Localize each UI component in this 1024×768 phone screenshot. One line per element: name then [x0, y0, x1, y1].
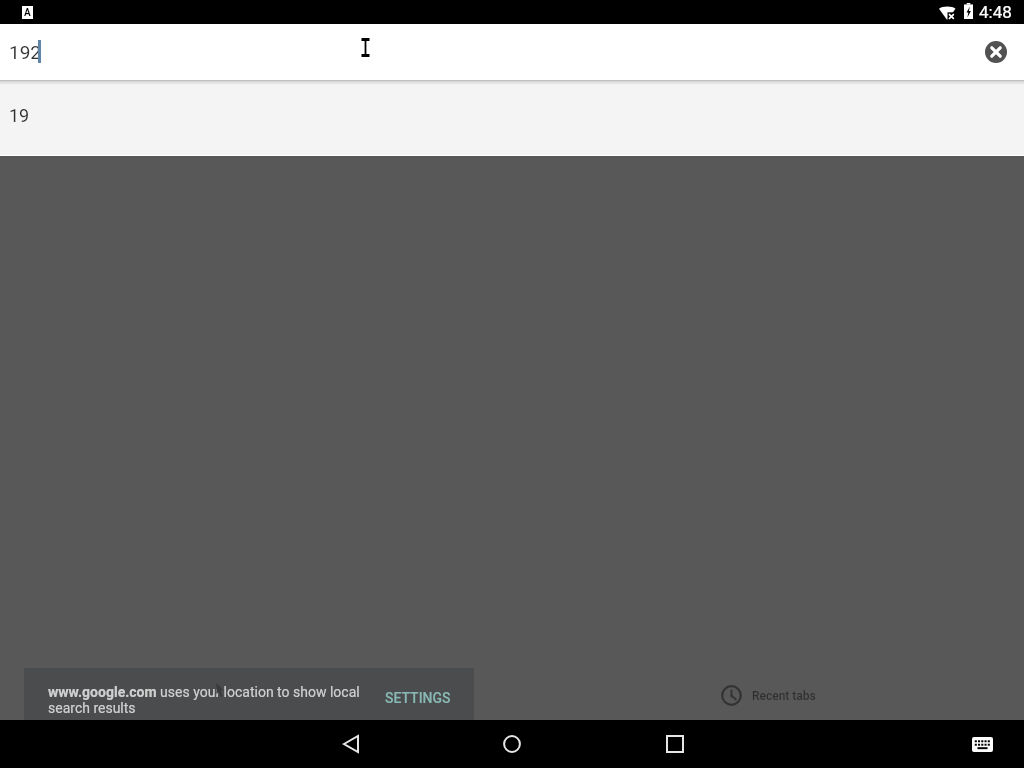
button[interactable]: Clear search [976, 32, 1016, 72]
button[interactable]: Home [488, 720, 536, 768]
staticText: Recent tabs [752, 689, 816, 703]
staticText: 19 [9, 105, 30, 126]
button[interactable]: 19 [0, 81, 1024, 155]
staticText: A [24, 7, 31, 19]
staticText: www.google.com uses your location to sho… [48, 684, 360, 716]
staticText: SETTINGS [385, 690, 451, 706]
button[interactable]: Recent tabs [721, 685, 816, 706]
button[interactable]: Back [327, 720, 375, 768]
button[interactable]: Recents [651, 720, 699, 768]
button[interactable]: SETTINGS [385, 690, 451, 706]
staticText: 4:48 [979, 2, 1012, 22]
button[interactable]: Show keyboard [962, 724, 1002, 764]
staticText: 192 [9, 41, 42, 63]
